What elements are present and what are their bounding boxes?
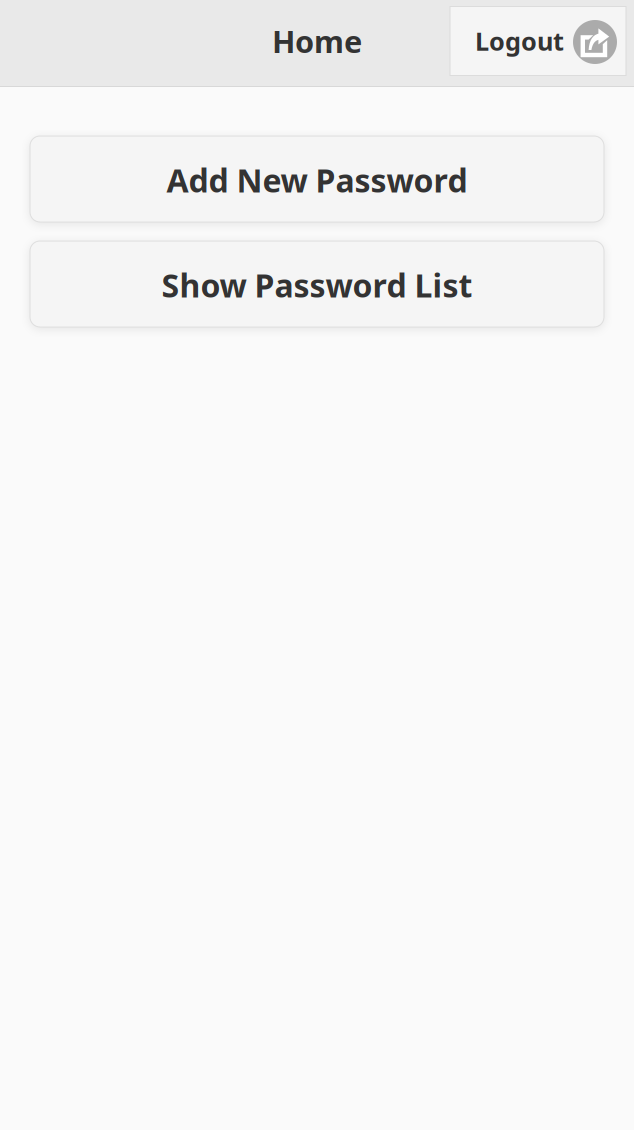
button[interactable]: Show Password List [30, 241, 604, 327]
button[interactable]: Logout [450, 6, 626, 75]
button[interactable]: Add New Password [30, 136, 604, 222]
staticText: Show Password List [161, 264, 472, 306]
staticText: Logout [475, 24, 564, 58]
staticText: Home [272, 21, 362, 61]
staticText: Add New Password [166, 159, 467, 201]
